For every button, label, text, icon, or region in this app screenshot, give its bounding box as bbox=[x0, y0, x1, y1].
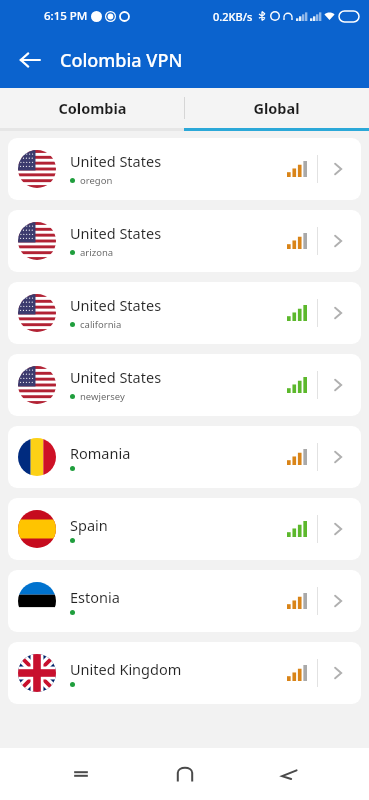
other: Open details bbox=[327, 302, 349, 324]
button[interactable]: Estonia bbox=[8, 570, 361, 632]
staticText: Romania bbox=[70, 443, 131, 463]
other: Open details bbox=[327, 158, 349, 180]
other: Open details bbox=[327, 446, 349, 468]
button[interactable]: Romania bbox=[8, 426, 361, 488]
staticText: United States bbox=[70, 295, 162, 315]
button[interactable]: United States bbox=[8, 282, 361, 344]
staticText: newjersey bbox=[80, 390, 125, 403]
staticText: Colombia VPN bbox=[60, 48, 183, 73]
staticText: 6:15 PM bbox=[44, 8, 88, 24]
staticText: 0.2KB/s bbox=[213, 9, 253, 24]
button[interactable]: Global bbox=[184, 88, 369, 128]
other: Open details bbox=[327, 230, 349, 252]
button[interactable]: Recents bbox=[57, 750, 105, 798]
button[interactable]: Back bbox=[8, 38, 52, 82]
staticText: oregon bbox=[80, 174, 113, 187]
button[interactable]: United States bbox=[8, 354, 361, 416]
other: Open details bbox=[327, 662, 349, 684]
staticText: california bbox=[80, 318, 122, 331]
staticText: Global bbox=[253, 98, 300, 118]
button[interactable]: Home bbox=[161, 750, 209, 798]
button[interactable]: United Kingdom bbox=[8, 642, 361, 704]
button[interactable]: United States bbox=[8, 138, 361, 200]
staticText: United States bbox=[70, 151, 162, 171]
other: Open details bbox=[327, 518, 349, 540]
button[interactable]: Back bbox=[265, 750, 313, 798]
staticText: United States bbox=[70, 367, 162, 387]
staticText: Colombia bbox=[58, 98, 127, 118]
button[interactable]: United States bbox=[8, 210, 361, 272]
staticText: Estonia bbox=[70, 587, 120, 607]
staticText: United Kingdom bbox=[70, 659, 182, 679]
staticText: United States bbox=[70, 223, 162, 243]
staticText: Spain bbox=[70, 515, 108, 535]
other: Open details bbox=[327, 590, 349, 612]
other: Open details bbox=[327, 374, 349, 396]
staticText: arizona bbox=[80, 246, 114, 259]
button[interactable]: Colombia bbox=[0, 88, 184, 128]
button[interactable]: Spain bbox=[8, 498, 361, 560]
